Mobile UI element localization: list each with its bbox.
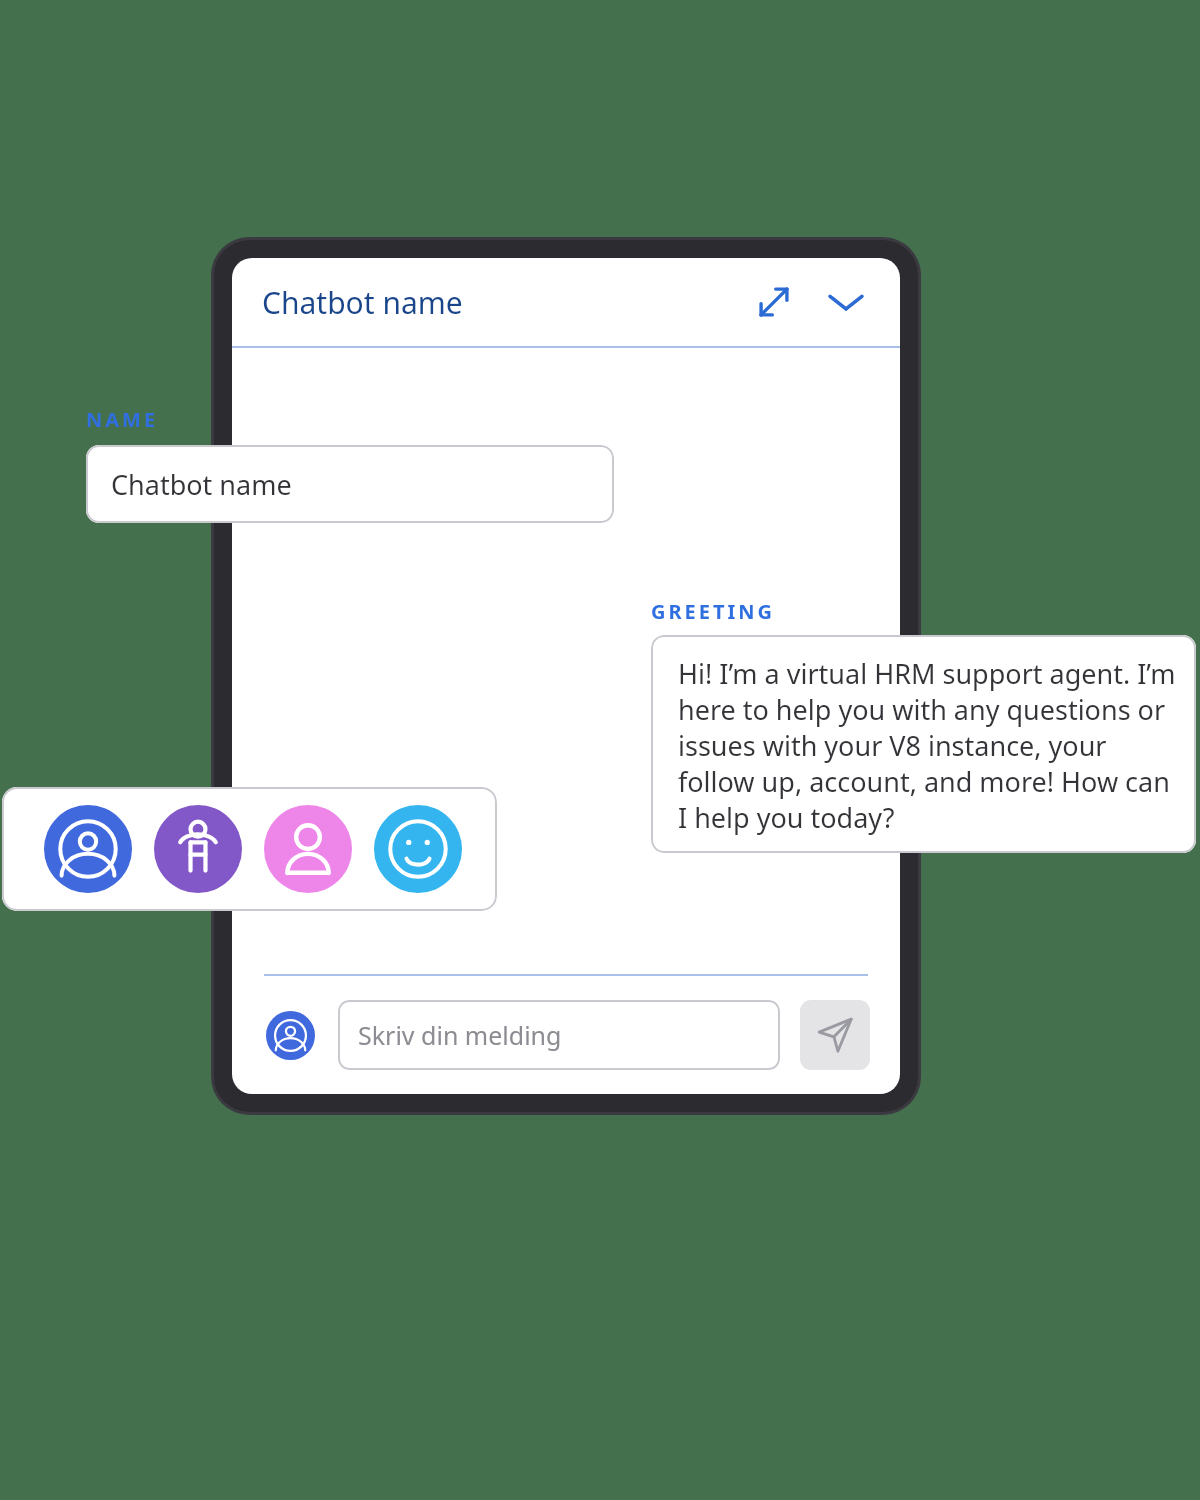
button[interactable]: Chatbot name	[262, 282, 463, 323]
button[interactable]: Collapse	[820, 276, 872, 328]
button[interactable]: Avatar person in circle	[44, 805, 132, 893]
button[interactable]: Send	[800, 1000, 870, 1070]
staticText: NAME	[86, 406, 159, 433]
button[interactable]: Hi! I’m a virtual HRM support agent. I’m…	[651, 635, 1196, 853]
button[interactable]: Avatar smiley	[374, 805, 462, 893]
button[interactable]: Expand	[748, 276, 800, 328]
staticText: GREETING	[651, 598, 776, 625]
staticText: Chatbot name	[111, 466, 292, 503]
button[interactable]: Chatbot name	[86, 445, 614, 523]
button[interactable]: Your avatar	[266, 1011, 315, 1060]
button[interactable]: Skriv din melding	[338, 1000, 780, 1070]
staticText: Hi! I’m a virtual HRM support agent. I’m…	[678, 655, 1178, 836]
staticText: Skriv din melding	[358, 1018, 562, 1052]
button[interactable]: Avatar accessibility	[154, 805, 242, 893]
button[interactable]: Avatar person	[264, 805, 352, 893]
